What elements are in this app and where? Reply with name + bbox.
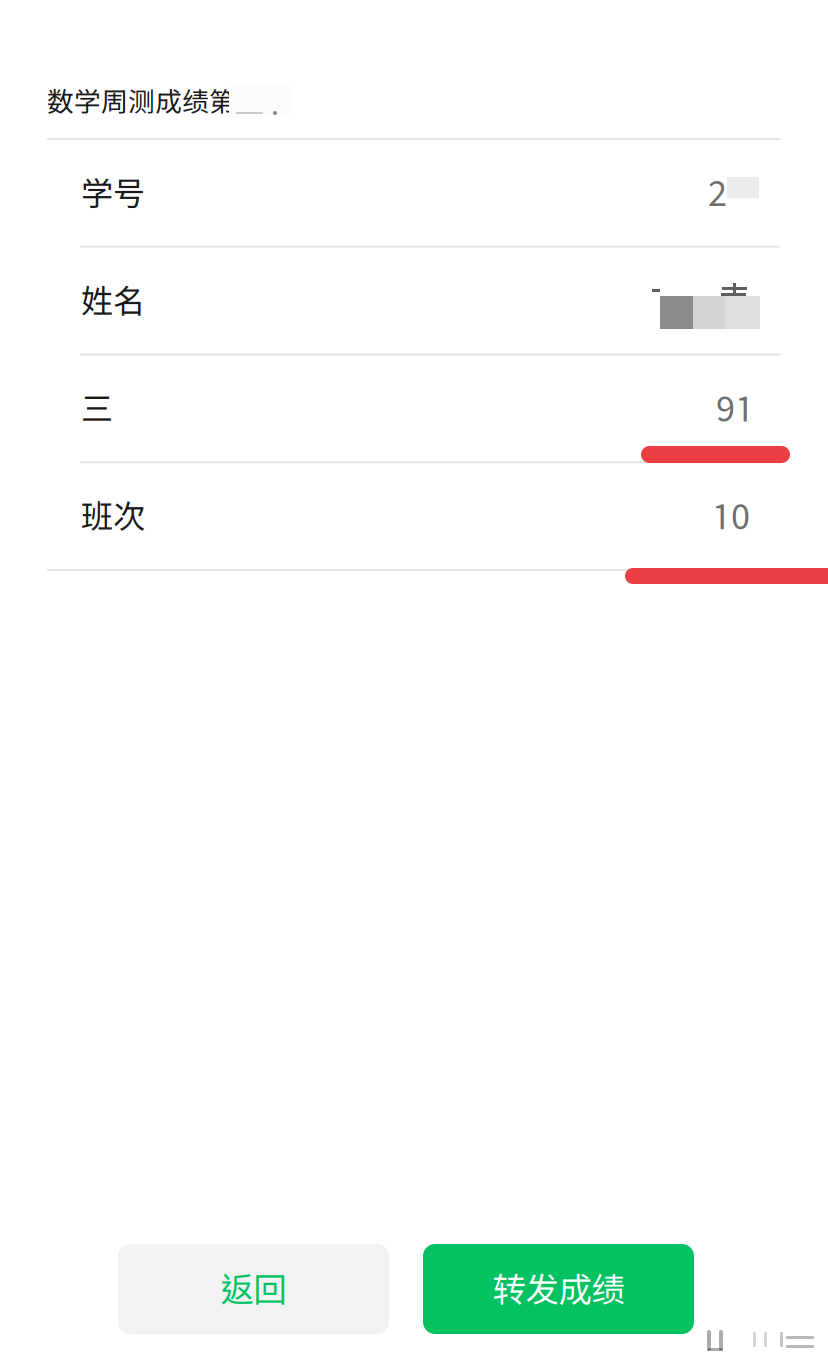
staticText: 2 [708, 172, 727, 213]
staticText: 转发成绩 [492, 1269, 624, 1309]
staticText: 10 [712, 496, 750, 537]
button[interactable]: 返回 [118, 1244, 389, 1334]
staticText: 学号 [81, 174, 145, 212]
staticText: 三 [81, 389, 113, 427]
staticText: 91 [716, 388, 754, 429]
button[interactable]: 转发成绩 [423, 1244, 694, 1334]
staticText: 姓名 [81, 282, 145, 319]
staticText: 数学周测成绩第 [47, 85, 236, 117]
staticText: 班次 [81, 497, 145, 535]
staticText: 返回 [220, 1269, 286, 1309]
